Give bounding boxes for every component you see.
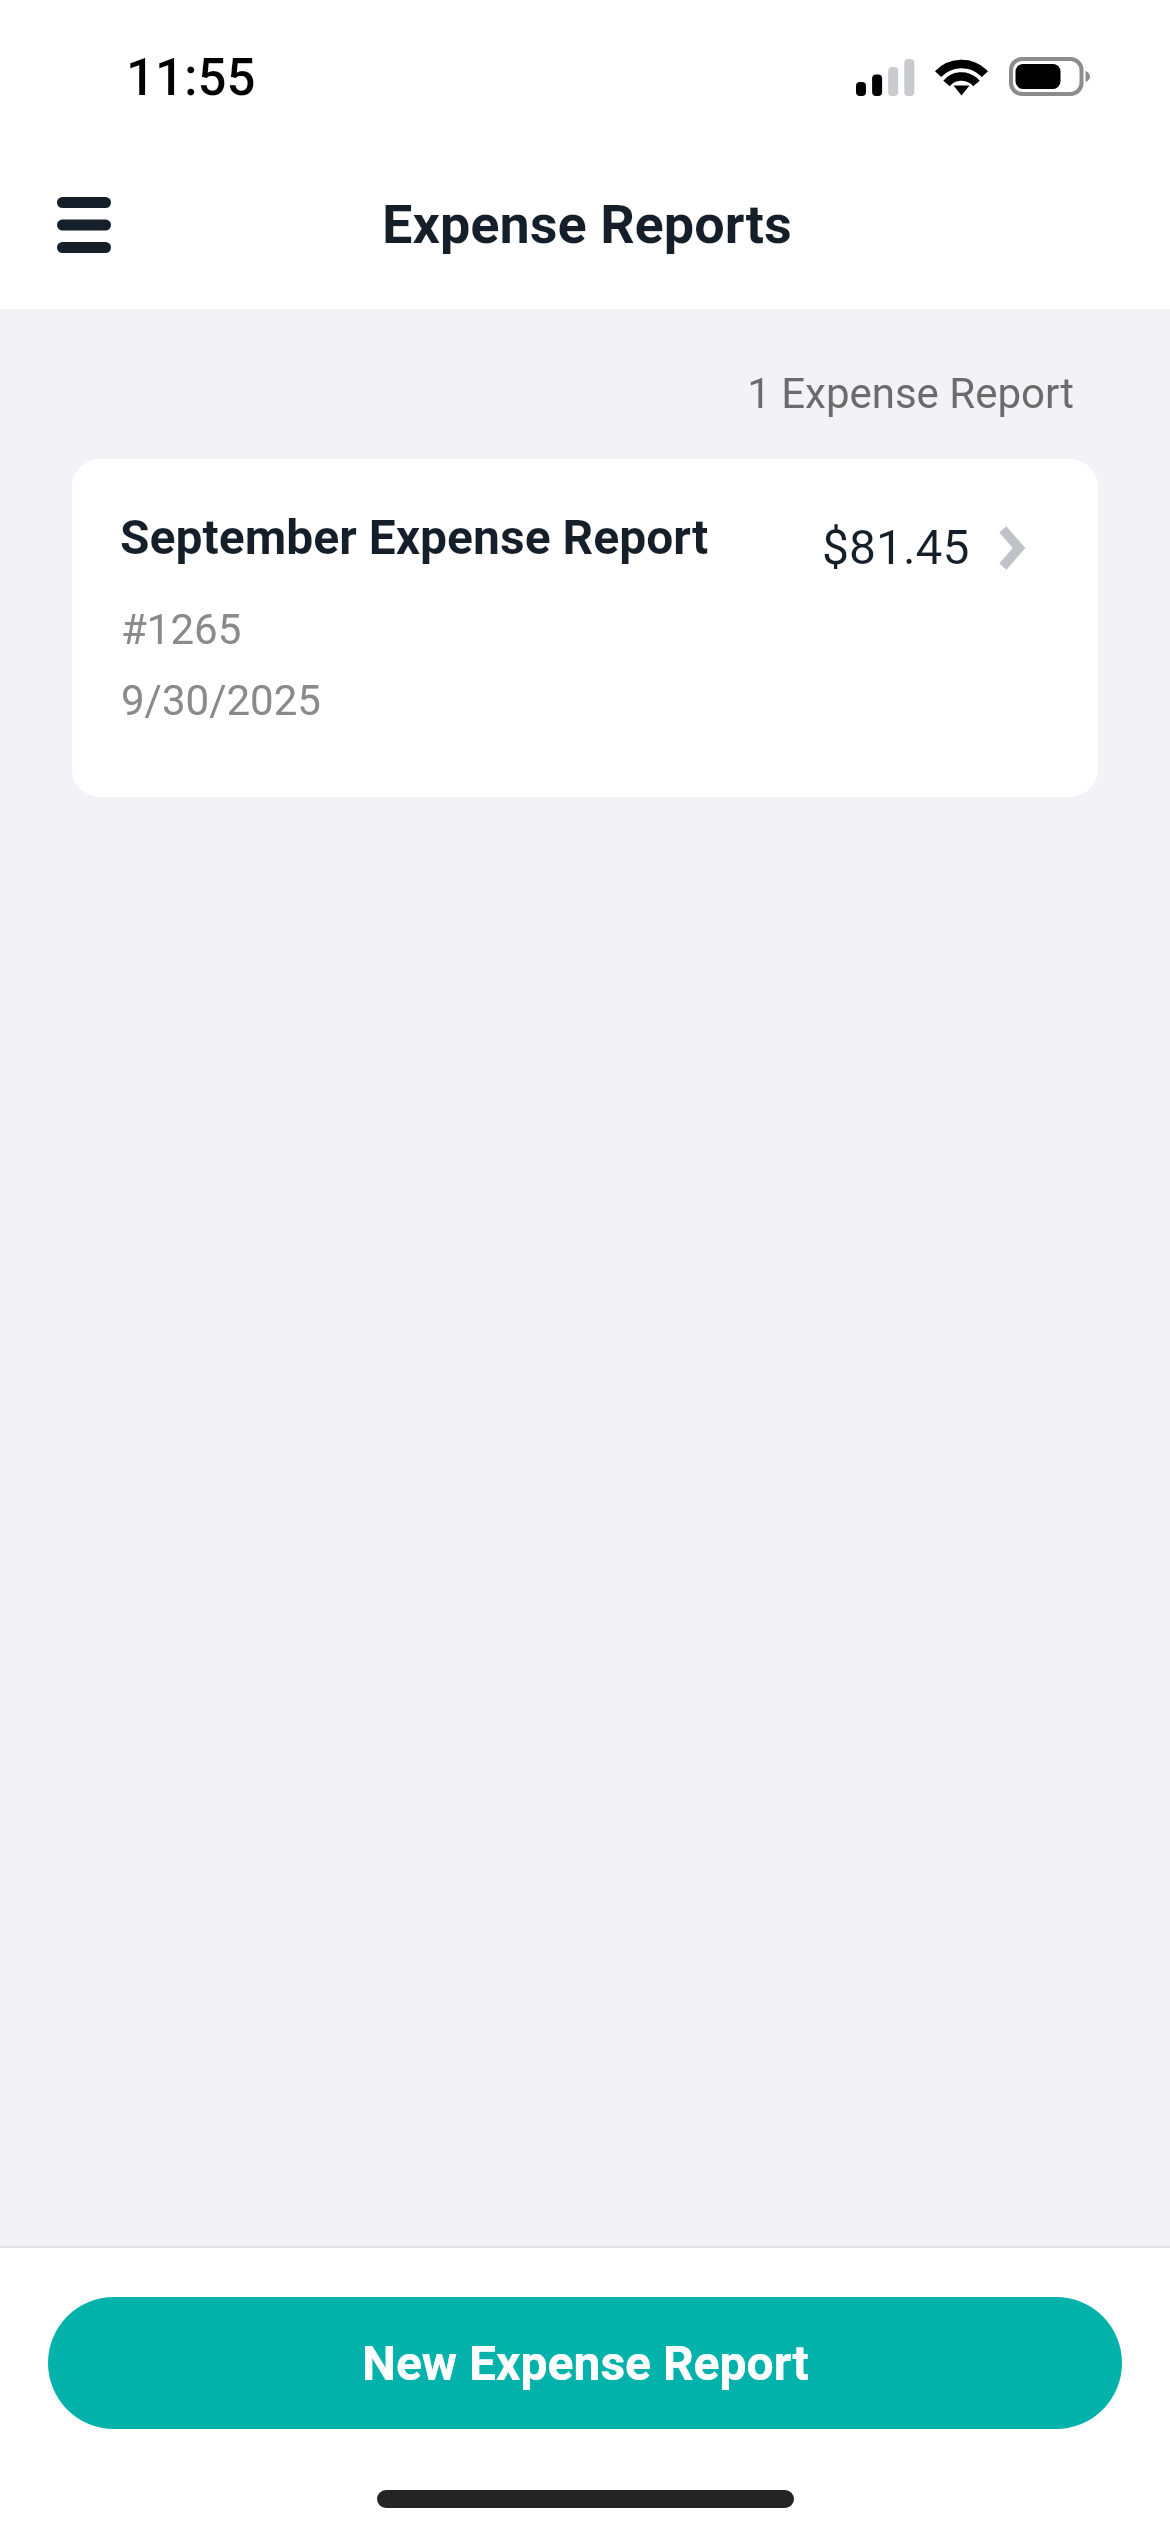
staticText: Expense Reports: [382, 193, 792, 256]
staticText: $81.45: [822, 519, 970, 575]
staticText: 9/30/2025: [121, 676, 321, 725]
staticText: New Expense Report: [362, 2335, 809, 2391]
staticText: September Expense Report: [120, 509, 709, 565]
button[interactable]: New Expense Report: [48, 2297, 1122, 2429]
staticText: #1265: [121, 605, 242, 654]
other: Open expense report: [1001, 527, 1027, 569]
button[interactable]: Open navigation menu: [32, 172, 136, 278]
staticText: 1 Expense Report: [0, 369, 1074, 418]
staticText: 11:55: [126, 48, 256, 108]
button[interactable]: September Expense Report: [72, 459, 1098, 797]
